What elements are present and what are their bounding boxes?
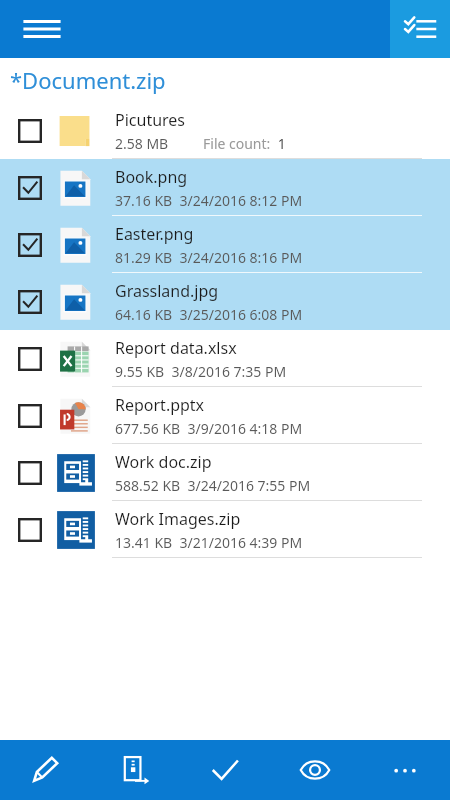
staticText: 13.41 KB 3/21/2016 4:39 PM <box>115 533 303 552</box>
button[interactable]: Grassland.jpg <box>0 273 450 330</box>
staticText: Easter.png <box>115 223 194 245</box>
button[interactable]: Work doc.zip <box>0 444 450 501</box>
staticText: *Document.zip <box>10 65 166 95</box>
button[interactable]: Book.png <box>0 159 450 216</box>
button[interactable]: Select all <box>390 0 450 58</box>
button[interactable]: Preview <box>270 740 360 800</box>
staticText: File count: <box>203 134 274 153</box>
button[interactable]: Report data.xlsx <box>0 330 450 387</box>
staticText: 2.58 MB <box>115 134 169 153</box>
staticText: 1 <box>274 134 286 153</box>
staticText: 81.29 KB 3/24/2016 8:16 PM <box>115 248 303 267</box>
staticText: 588.52 KB 3/24/2016 7:55 PM <box>115 476 311 495</box>
staticText: Report data.xlsx <box>115 337 237 359</box>
button[interactable]: Confirm <box>180 740 270 800</box>
staticText: 37.16 KB 3/24/2016 8:12 PM <box>115 191 303 210</box>
button[interactable]: Menu <box>0 0 84 58</box>
staticText: Work Images.zip <box>115 508 241 530</box>
button[interactable]: Rename <box>0 740 90 800</box>
button[interactable]: More options <box>360 740 450 800</box>
staticText: Grassland.jpg <box>115 280 219 302</box>
staticText: 9.55 KB 3/8/2016 7:35 PM <box>115 362 287 381</box>
button[interactable]: Work Images.zip <box>0 501 450 558</box>
staticText: Picutures <box>115 109 186 131</box>
staticText: 677.56 KB 3/9/2016 4:18 PM <box>115 419 303 438</box>
button[interactable]: Picutures <box>0 102 450 159</box>
staticText: Book.png <box>115 166 188 188</box>
staticText: Report.pptx <box>115 394 205 416</box>
button[interactable]: Report.pptx <box>0 387 450 444</box>
button[interactable]: Easter.png <box>0 216 450 273</box>
staticText: 64.16 KB 3/25/2016 6:08 PM <box>115 305 303 324</box>
button[interactable]: Extract <box>90 740 180 800</box>
staticText: Work doc.zip <box>115 451 212 473</box>
